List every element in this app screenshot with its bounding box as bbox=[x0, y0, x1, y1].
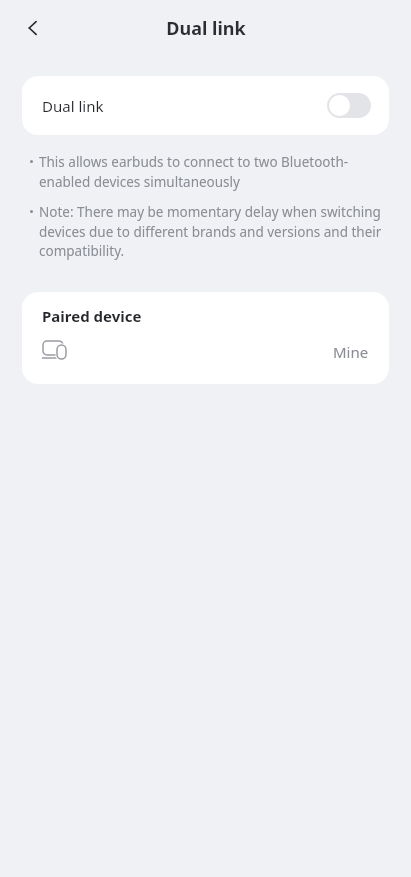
staticText: Note: There may be momentary delay when … bbox=[39, 203, 387, 260]
staticText: Paired device bbox=[42, 306, 142, 326]
button[interactable]: Dual link bbox=[22, 76, 389, 135]
button[interactable]: Dual link toggle bbox=[327, 93, 371, 118]
staticText: This allows earbuds to connect to two Bl… bbox=[39, 153, 387, 191]
staticText: Mine bbox=[333, 342, 369, 362]
staticText: Dual link bbox=[42, 96, 104, 116]
button[interactable]: Back bbox=[12, 7, 54, 49]
button[interactable]: Paired device bbox=[22, 292, 389, 384]
staticText: Dual link bbox=[166, 16, 246, 41]
